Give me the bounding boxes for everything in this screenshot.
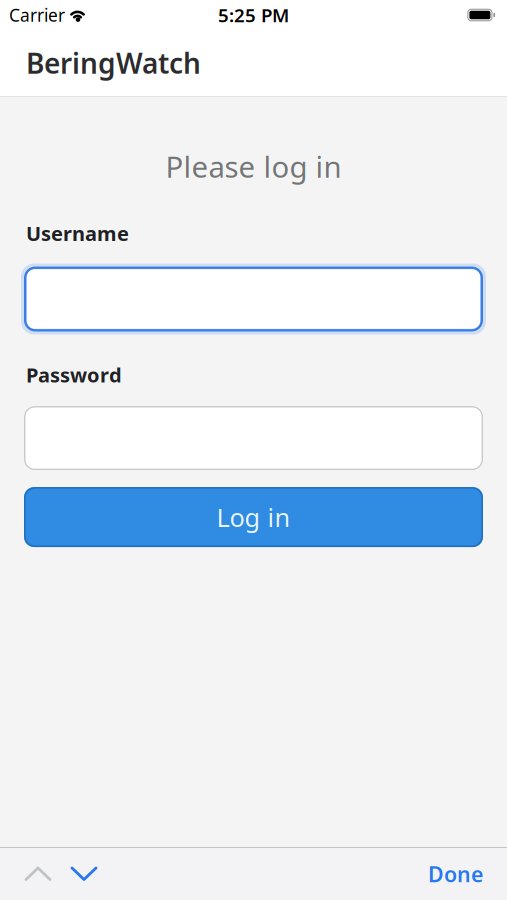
staticText: Log in — [216, 500, 290, 534]
button[interactable]: Done — [428, 860, 483, 888]
staticText: Done — [428, 860, 483, 888]
staticText: 5:25 PM — [218, 3, 289, 27]
staticText: BeringWatch — [26, 44, 201, 82]
staticText: Carrier — [9, 3, 65, 26]
button[interactable]: Username — [24, 266, 483, 331]
button[interactable]: Password — [24, 406, 483, 470]
button[interactable]: Previous field — [24, 866, 52, 882]
staticText: Please log in — [165, 147, 341, 186]
staticText: Password — [26, 361, 122, 388]
button[interactable]: Log in — [24, 487, 483, 547]
button[interactable]: Next field — [70, 866, 98, 882]
staticText: Username — [26, 220, 129, 247]
